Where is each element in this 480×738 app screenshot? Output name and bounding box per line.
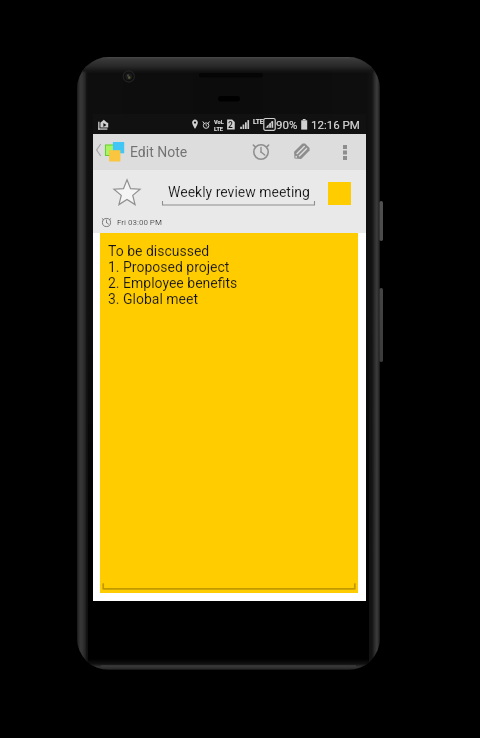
button[interactable]: Fri 03:00 PM bbox=[102, 215, 162, 229]
button[interactable]: Set reminder bbox=[241, 134, 281, 170]
staticText: Weekly review meeting bbox=[168, 184, 310, 200]
staticText: 3. Global meet bbox=[108, 291, 199, 307]
staticText: 2 bbox=[228, 120, 233, 130]
staticText: To be discussed bbox=[108, 243, 210, 259]
button[interactable]: Edit Note bbox=[93, 134, 186, 170]
staticText: VoL bbox=[214, 119, 224, 126]
staticText: LTE bbox=[253, 118, 264, 126]
button[interactable]: More options bbox=[324, 134, 366, 170]
staticText: 2. Employee benefits bbox=[108, 275, 238, 291]
staticText: 1. Proposed project bbox=[108, 259, 230, 275]
button[interactable]: To be discussed bbox=[100, 233, 358, 593]
button[interactable]: Edit note bbox=[282, 134, 320, 170]
staticText: Fri 03:00 PM bbox=[117, 218, 162, 227]
button[interactable]: Favourite bbox=[107, 173, 147, 213]
button[interactable]: Weekly review meeting bbox=[162, 182, 315, 210]
staticText: 12:16 PM bbox=[311, 118, 360, 131]
staticText: Edit Note bbox=[130, 144, 188, 160]
staticText: 90% bbox=[276, 118, 298, 131]
staticText: LTE bbox=[214, 126, 224, 133]
